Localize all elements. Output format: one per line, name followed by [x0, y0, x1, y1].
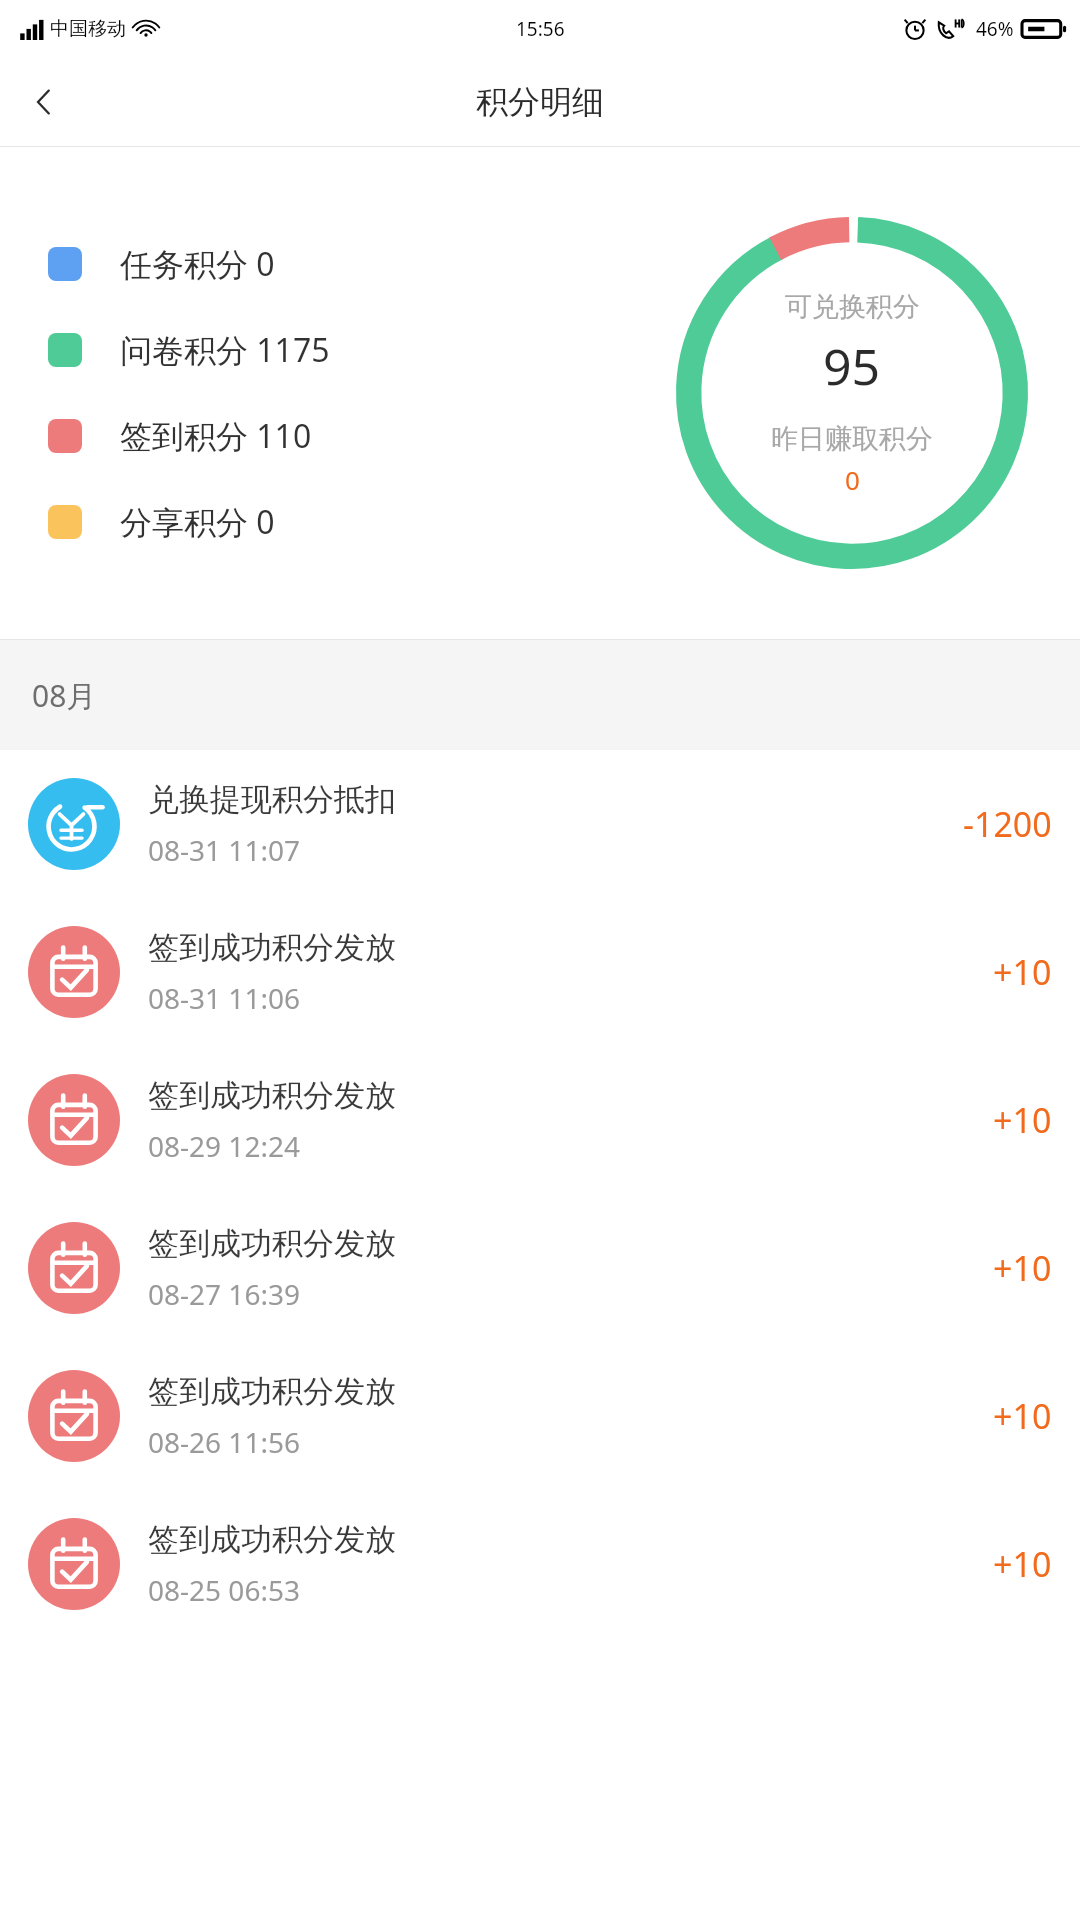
staticText: 中国移动: [50, 17, 126, 41]
staticText: 0: [845, 462, 860, 497]
staticText: 签到积分 110: [120, 414, 312, 458]
staticText: +10: [993, 1245, 1052, 1291]
button[interactable]: 签到成功积分发放: [0, 1046, 1080, 1194]
staticText: +10: [993, 1393, 1052, 1439]
button[interactable]: 兑换提现积分抵扣: [0, 750, 1080, 898]
staticText: 08-27 16:39: [148, 1275, 300, 1313]
button[interactable]: 签到成功积分发放: [0, 1490, 1080, 1638]
staticText: 08-29 12:24: [148, 1127, 300, 1165]
staticText: 积分明细: [476, 82, 604, 122]
staticText: +10: [993, 1541, 1052, 1587]
staticText: 可兑换积分: [785, 290, 920, 324]
staticText: 08-25 06:53: [148, 1571, 300, 1609]
button[interactable]: 签到成功积分发放: [0, 898, 1080, 1046]
staticText: 分享积分 0: [120, 500, 275, 544]
staticText: 签到成功积分发放: [148, 928, 396, 967]
staticText: -1200: [963, 801, 1052, 847]
staticText: 签到成功积分发放: [148, 1520, 396, 1559]
staticText: 95: [823, 332, 881, 400]
staticText: 签到成功积分发放: [148, 1372, 396, 1411]
staticText: 08-31 11:07: [148, 831, 300, 869]
staticText: 问卷积分 1175: [120, 328, 330, 372]
staticText: 08-31 11:06: [148, 979, 300, 1017]
staticText: 昨日赚取积分: [771, 422, 933, 456]
staticText: 兑换提现积分抵扣: [148, 780, 396, 819]
button[interactable]: 签到成功积分发放: [0, 1342, 1080, 1490]
staticText: 08-26 11:56: [148, 1423, 300, 1461]
staticText: +10: [993, 949, 1052, 995]
staticText: +10: [993, 1097, 1052, 1143]
staticText: 签到成功积分发放: [148, 1076, 396, 1115]
button[interactable]: 签到成功积分发放: [0, 1194, 1080, 1342]
staticText: 签到成功积分发放: [148, 1224, 396, 1263]
staticText: 46%: [976, 16, 1014, 42]
staticText: 08月: [32, 675, 97, 716]
staticText: 任务积分 0: [120, 242, 275, 286]
button[interactable]: 返回: [0, 58, 88, 146]
staticText: 15:56: [516, 16, 565, 42]
